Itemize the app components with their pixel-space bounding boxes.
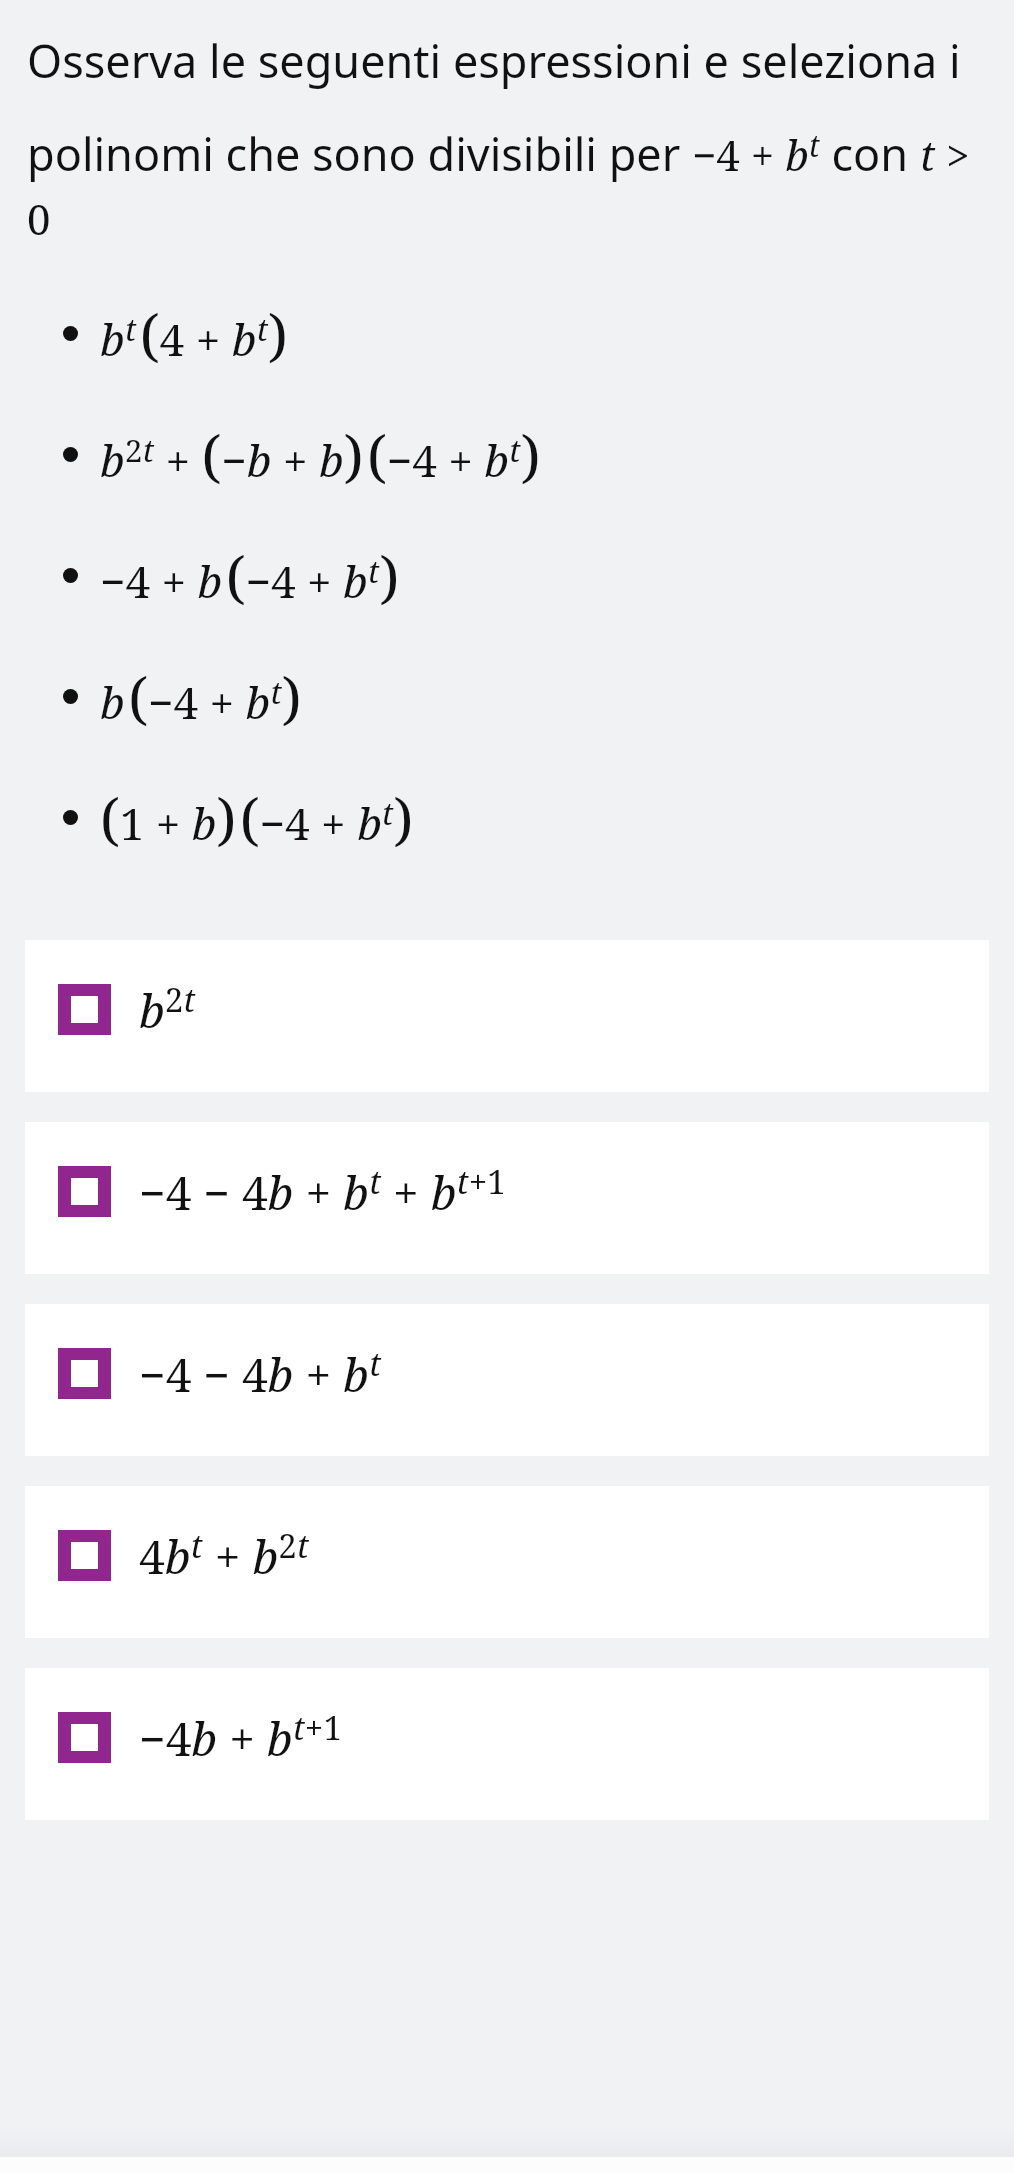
staticText: b2t + (−b + b) (−4 + bt) bbox=[100, 416, 541, 494]
staticText: −4 − 4b + bt bbox=[139, 1341, 382, 1406]
button[interactable]: Opzione risposta bbox=[25, 1122, 989, 1274]
button[interactable]: Opzione risposta bbox=[25, 940, 989, 1092]
other: Opzione risposta bbox=[58, 1530, 111, 1581]
button[interactable]: Opzione risposta bbox=[25, 1486, 989, 1638]
button[interactable]: Opzione risposta bbox=[25, 1668, 989, 1820]
staticText: −4 + b (−4 + bt) bbox=[100, 537, 400, 615]
staticText: −4 − 4b + bt + bt+1 bbox=[139, 1159, 506, 1224]
other: Opzione risposta bbox=[58, 1712, 111, 1763]
staticText: bt (4 + bt) bbox=[100, 295, 288, 373]
other: Opzione risposta bbox=[58, 984, 111, 1035]
staticText: 4bt + b2t bbox=[139, 1523, 309, 1588]
staticText: b (−4 + bt) bbox=[100, 658, 302, 736]
staticText: (1 + b) (−4 + bt) bbox=[100, 779, 414, 857]
other: Opzione risposta bbox=[58, 1166, 111, 1217]
staticText: −4b + bt+1 bbox=[139, 1705, 342, 1770]
staticText: b2t bbox=[139, 977, 196, 1042]
other: Opzione risposta bbox=[58, 1348, 111, 1399]
button[interactable]: Opzione risposta bbox=[25, 1304, 989, 1456]
staticText: Osserva le seguenti espressioni e selezi… bbox=[27, 30, 996, 248]
